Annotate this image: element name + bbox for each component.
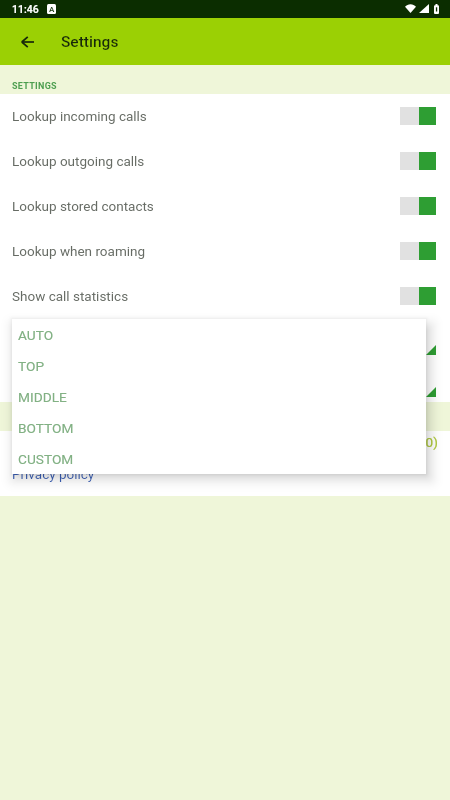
staticText: BOTTOM (18, 420, 74, 436)
staticText: Lookup outgoing calls (12, 153, 400, 169)
button[interactable]: MIDDLE (12, 381, 426, 412)
button[interactable]: Privacy policy (0, 461, 450, 486)
staticText: Privacy policy (12, 466, 95, 482)
button[interactable]: Blocked numbers (0, 429, 450, 454)
staticText: Lookup stored contacts (12, 198, 400, 214)
button[interactable]: Show call statistics (0, 274, 450, 319)
staticText: Lookup incoming calls (12, 108, 400, 124)
staticText: MIDDLE (18, 389, 67, 405)
staticText: 11:46 (12, 3, 39, 15)
staticText: TOP (18, 358, 45, 374)
staticText: Settings (61, 33, 119, 51)
button[interactable]: Notification position (0, 364, 450, 409)
staticText: AUTO (18, 327, 54, 343)
button[interactable]: Lookup outgoing calls (0, 139, 450, 184)
button[interactable]: CUSTOM (12, 443, 426, 474)
button[interactable]: TOP (12, 350, 426, 381)
button[interactable]: Lookup incoming calls (0, 94, 450, 139)
staticText: CUSTOM (18, 451, 74, 467)
staticText: Notification priority (12, 333, 127, 349)
staticText: A (49, 5, 55, 14)
staticText: Lookup when roaming (12, 243, 400, 259)
staticText: SETTINGS (12, 81, 57, 92)
button[interactable]: Notification priority (0, 319, 450, 364)
staticText: Show call statistics (12, 288, 400, 304)
button[interactable]: Lookup stored contacts (0, 184, 450, 229)
button[interactable]: Back (7, 22, 47, 62)
staticText: Notification position (12, 378, 134, 394)
button[interactable]: Lookup when roaming (0, 229, 450, 274)
staticText: ABOUT (12, 418, 44, 429)
button[interactable]: BOTTOM (12, 412, 426, 443)
button[interactable]: AUTO (12, 319, 426, 350)
staticText: (0) (421, 434, 438, 450)
